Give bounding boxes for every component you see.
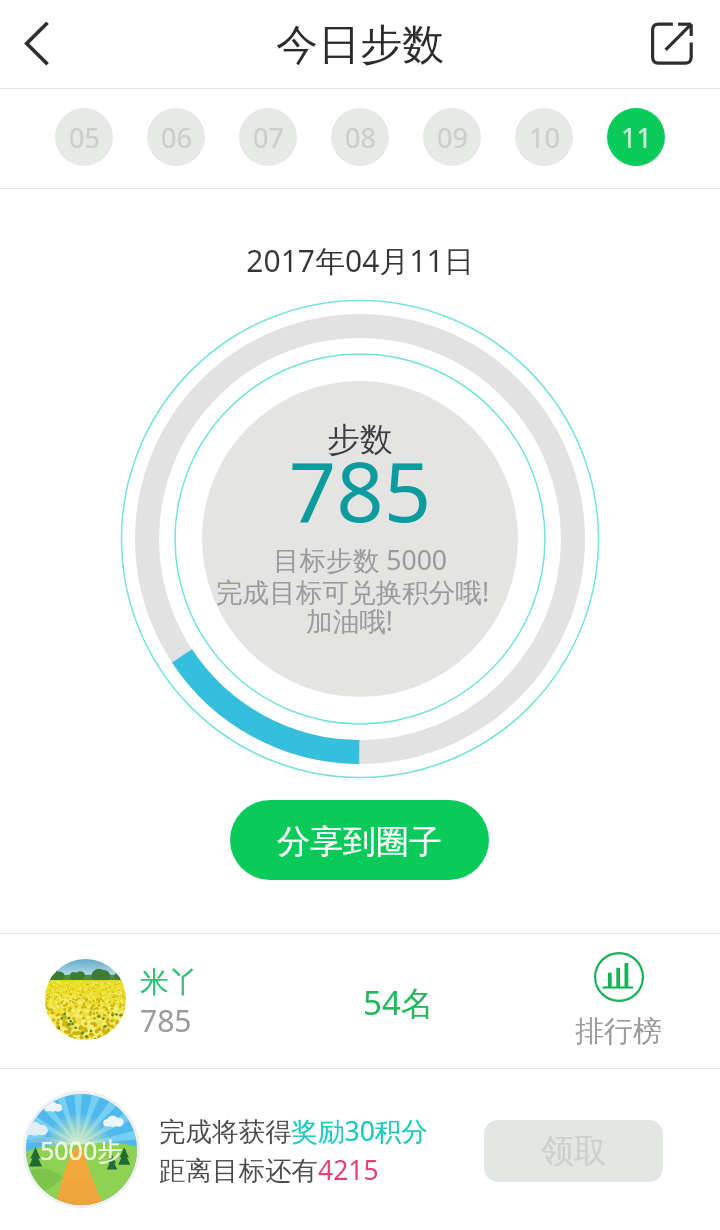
button[interactable]: 06 bbox=[147, 108, 205, 166]
button[interactable]: 米丫 bbox=[0, 933, 720, 1068]
staticText: 米丫 bbox=[140, 964, 198, 1001]
staticText: 54名 bbox=[363, 980, 434, 1025]
staticText: 今日步数 bbox=[0, 19, 720, 72]
staticText: 5000步 bbox=[40, 1133, 123, 1167]
staticText: 11 bbox=[621, 119, 652, 156]
button[interactable]: 10 bbox=[515, 108, 573, 166]
staticText: 07 bbox=[253, 119, 284, 156]
button[interactable]: 分享到圈子 bbox=[230, 800, 489, 880]
button[interactable]: Share bbox=[645, 15, 700, 70]
button[interactable]: 排行榜 bbox=[570, 952, 667, 1050]
button[interactable]: 09 bbox=[423, 108, 481, 166]
button[interactable]: 07 bbox=[239, 108, 297, 166]
staticText: 2017年04月11日 bbox=[0, 240, 720, 281]
staticText: 10 bbox=[529, 119, 560, 156]
staticText: 目标步数 5000 bbox=[0, 542, 720, 578]
staticText: 加油哦! bbox=[306, 603, 393, 639]
staticText: 785 bbox=[0, 433, 720, 546]
button[interactable]: 08 bbox=[331, 108, 389, 166]
button[interactable]: 领取 bbox=[484, 1120, 663, 1182]
staticText: 09 bbox=[437, 119, 468, 156]
staticText: 06 bbox=[161, 119, 192, 156]
staticText: 05 bbox=[69, 119, 100, 156]
staticText: 领取 bbox=[541, 1130, 607, 1172]
button[interactable]: Back bbox=[6, 14, 64, 72]
button[interactable]: 11 bbox=[607, 108, 665, 166]
staticText: 完成目标可兑换积分哦! bbox=[216, 574, 490, 610]
staticText: 完成将获得奖励30积分 距离目标还有4215 bbox=[159, 1113, 428, 1188]
staticText: 排行榜 bbox=[575, 1013, 662, 1050]
staticText: 08 bbox=[345, 119, 376, 156]
button[interactable]: 05 bbox=[55, 108, 113, 166]
staticText: 步数 bbox=[0, 419, 720, 461]
staticText: 分享到圈子 bbox=[277, 821, 442, 863]
staticText: 785 bbox=[140, 1000, 192, 1041]
